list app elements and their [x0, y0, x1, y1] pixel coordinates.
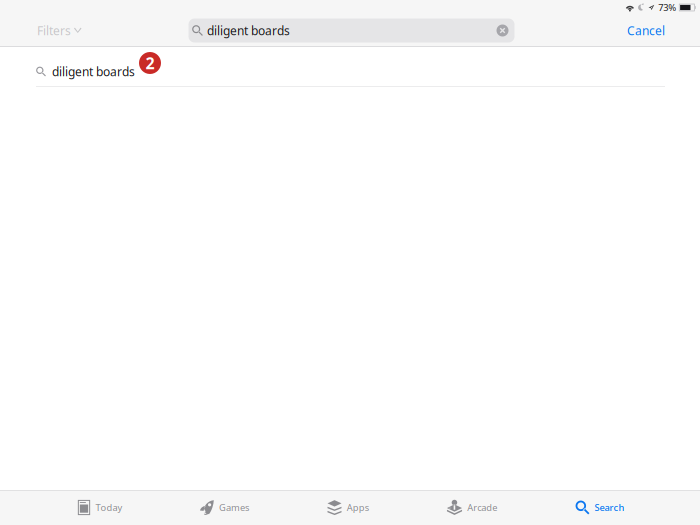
- button[interactable]: Search: [538, 490, 662, 525]
- button[interactable]: Filters: [37, 17, 81, 43]
- button[interactable]: Apps: [286, 490, 410, 525]
- button[interactable]: Cancel: [627, 17, 665, 43]
- staticText: Filters: [37, 22, 71, 38]
- staticText: 2: [145, 52, 154, 74]
- staticText: 73%: [658, 1, 676, 14]
- staticText: Today: [96, 501, 123, 514]
- staticText: Search: [594, 501, 624, 514]
- staticText: diligent boards: [207, 22, 290, 38]
- button[interactable]: Games: [162, 490, 286, 525]
- staticText: Apps: [347, 501, 369, 514]
- button[interactable]: Arcade: [410, 490, 534, 525]
- staticText: Games: [219, 501, 249, 514]
- button[interactable]: Today: [38, 490, 162, 525]
- button[interactable]: diligent boards: [0, 57, 700, 86]
- button[interactable]: Clear search text: [491, 18, 513, 42]
- staticText: diligent boards: [52, 63, 135, 79]
- staticText: Cancel: [627, 22, 665, 38]
- staticText: Arcade: [467, 501, 497, 514]
